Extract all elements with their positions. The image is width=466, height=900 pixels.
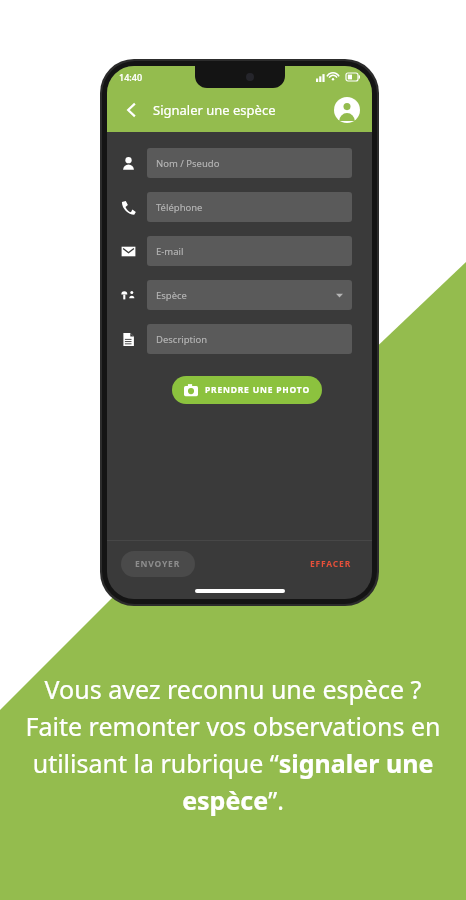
- staticText: Signaler une espèce: [153, 101, 276, 119]
- button[interactable]: Téléphone: [121, 192, 352, 222]
- button[interactable]: PRENDRE UNE PHOTO: [172, 376, 322, 404]
- button[interactable]: Compte: [332, 95, 362, 125]
- button[interactable]: ENVOYER: [121, 551, 195, 577]
- staticText: Description: [156, 333, 208, 346]
- staticText: Nom / Pseudo: [156, 157, 220, 170]
- button[interactable]: Retour: [117, 95, 147, 125]
- staticText: E-mail: [156, 245, 184, 258]
- staticText: Espèce: [156, 289, 187, 302]
- button[interactable]: Espèce: [121, 280, 352, 310]
- button[interactable]: EFFACER: [304, 551, 358, 577]
- staticText: 14:40: [119, 71, 143, 83]
- staticText: Téléphone: [156, 201, 203, 214]
- staticText: PRENDRE UNE PHOTO: [205, 384, 310, 396]
- staticText: Vous avez reconnu une espèce ? Faite rem…: [24, 672, 442, 817]
- staticText: EFFACER: [310, 558, 352, 570]
- button[interactable]: Description: [121, 324, 352, 354]
- button[interactable]: Nom / Pseudo: [121, 148, 352, 178]
- button[interactable]: E-mail: [121, 236, 352, 266]
- staticText: ENVOYER: [135, 558, 181, 570]
